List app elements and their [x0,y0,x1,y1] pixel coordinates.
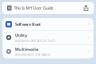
button[interactable]: Utility [2,31,93,44]
button[interactable]: Software Boot [2,18,93,30]
staticText: Software Boot [15,22,41,27]
staticText: Entertainment that matters [15,53,50,56]
staticText: Utility [15,33,27,38]
staticText: This Is MY User Guide [14,5,53,11]
button[interactable]: Multimedia [2,44,93,58]
staticText: Multimedia [15,47,38,52]
button[interactable]: Share [83,5,89,11]
staticText: Accessories and add-on tools [15,39,55,42]
